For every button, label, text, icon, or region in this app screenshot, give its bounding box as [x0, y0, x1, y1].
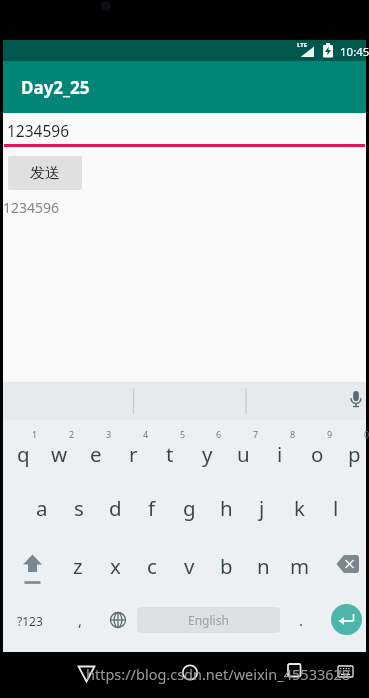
button[interactable]: i [262, 440, 298, 468]
staticText: 8 [290, 428, 296, 440]
staticText: m [290, 552, 310, 580]
button[interactable]: w [41, 440, 77, 468]
staticText: English [188, 612, 229, 628]
button[interactable]: g [171, 494, 207, 522]
button[interactable]: f [134, 494, 170, 522]
button[interactable]: English [137, 607, 280, 633]
staticText: r [129, 440, 138, 468]
button[interactable]: Day2_25 [3, 61, 366, 113]
staticText: s [74, 494, 84, 522]
staticText: . [299, 610, 304, 630]
staticText: ?123 [17, 613, 43, 629]
staticText: k [294, 494, 305, 522]
button[interactable]: b [208, 552, 244, 580]
staticText: g [183, 494, 196, 522]
staticText: 2 [69, 428, 75, 440]
button[interactable]: v [171, 552, 207, 580]
button[interactable] [62, 652, 112, 698]
button[interactable]: ?123 [12, 607, 48, 635]
button[interactable]: r [115, 440, 151, 468]
staticText: 9 [327, 428, 333, 440]
staticText: p [348, 440, 361, 468]
button[interactable]: d [97, 494, 133, 522]
staticText: q [17, 440, 30, 468]
staticText: x [110, 552, 121, 580]
button[interactable]: s [61, 494, 97, 522]
button[interactable]: q [5, 440, 41, 468]
staticText: c [147, 552, 157, 580]
staticText: Day2_25 [21, 76, 90, 99]
staticText: u [237, 440, 250, 468]
staticText: y [202, 440, 213, 468]
staticText: z [73, 552, 83, 580]
button[interactable]: z [60, 552, 96, 580]
staticText: 7 [253, 428, 259, 440]
staticText: i [277, 440, 283, 468]
staticText: d [109, 494, 122, 522]
staticText: t [166, 440, 174, 468]
staticText: v [184, 552, 195, 580]
button[interactable]: a [24, 494, 60, 522]
staticText: e [90, 440, 102, 468]
staticText: LTE [297, 41, 308, 49]
button[interactable]: m [282, 552, 318, 580]
staticText: 发送 [30, 164, 60, 183]
button[interactable]: o [299, 440, 335, 468]
button[interactable]: x [97, 552, 133, 580]
staticText: 6 [216, 428, 222, 440]
staticText: 5 [180, 428, 186, 440]
staticText: f [148, 494, 156, 522]
staticText: h [220, 494, 233, 522]
button[interactable]: l [318, 494, 354, 522]
button[interactable]: t [152, 440, 188, 468]
button[interactable]: n [245, 552, 281, 580]
staticText: n [257, 552, 270, 580]
staticText: 4 [143, 428, 149, 440]
staticText: 10:45 [340, 44, 369, 60]
staticText: w [51, 440, 68, 468]
button[interactable]: e [78, 440, 114, 468]
staticText: , [78, 610, 83, 630]
button[interactable]: p [336, 440, 369, 468]
button[interactable]: k [281, 494, 317, 522]
button[interactable]: j [244, 494, 280, 522]
button[interactable]: 发送 [8, 156, 82, 190]
button[interactable] [165, 652, 215, 698]
button[interactable]: u [225, 440, 261, 468]
staticText: https://blog.csdn.net/weixin_45533628 [86, 664, 351, 684]
button[interactable]: . [283, 606, 319, 634]
staticText: j [259, 494, 265, 522]
staticText: a [36, 494, 48, 522]
button[interactable]: h [208, 494, 244, 522]
button[interactable]: c [134, 552, 170, 580]
staticText: l [333, 494, 339, 522]
button[interactable]: y [189, 440, 225, 468]
button[interactable]: , [62, 606, 98, 634]
staticText: 1234596 [3, 198, 60, 217]
staticText: o [311, 440, 324, 468]
staticText: 0 [364, 428, 369, 440]
staticText: 1 [32, 428, 38, 440]
staticText: 1234596 [7, 120, 70, 141]
staticText: b [220, 552, 233, 580]
staticText: 3 [106, 428, 112, 440]
button[interactable] [3, 382, 366, 420]
button[interactable] [269, 652, 319, 698]
